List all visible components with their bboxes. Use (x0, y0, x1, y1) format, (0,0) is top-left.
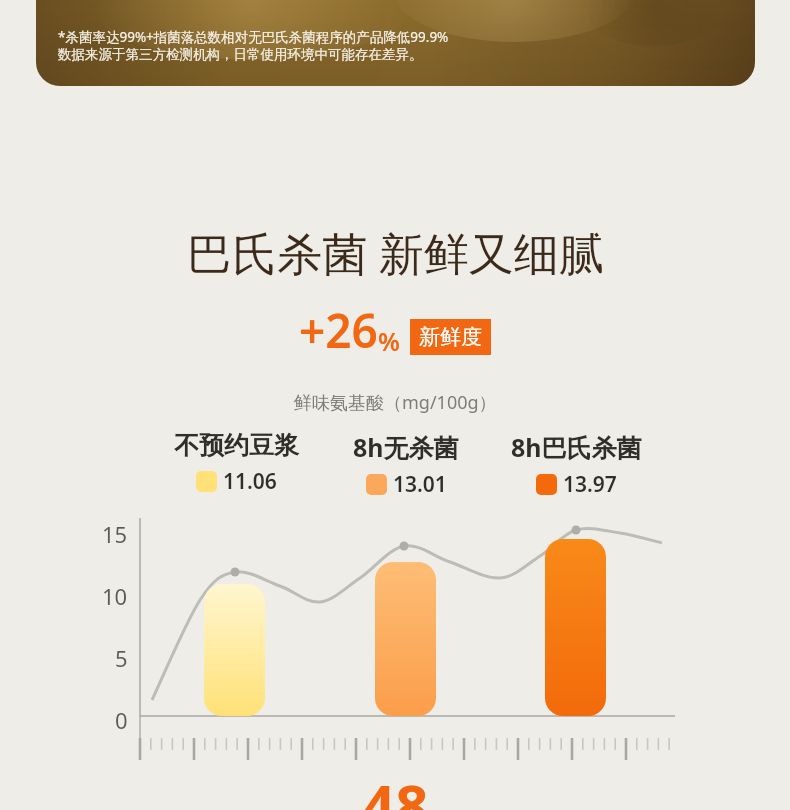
staticText: 鲜味氨基酸（mg/100g） (294, 390, 497, 415)
button[interactable]: *杀菌率达99%+指菌落总数相对无巴氏杀菌程序的产品降低99.9% (36, 0, 755, 86)
staticText: 巴氏杀菌 新鲜又细腻 (187, 222, 604, 283)
staticText: 5 (115, 643, 128, 673)
button[interactable]: 不预约豆浆 (136, 430, 336, 496)
staticText: 8h巴氏杀菌 (511, 430, 642, 464)
staticText: 数据来源于第三方检测机构，日常使用环境中可能存在差异。 (58, 46, 423, 63)
staticText: 11.06 (223, 467, 277, 496)
button[interactable]: 新鲜度 (410, 319, 491, 355)
staticText: 8h无杀菌 (353, 430, 459, 464)
staticText: 13.97 (563, 470, 617, 499)
staticText: 不预约豆浆 (174, 430, 299, 461)
staticText: % (378, 324, 400, 358)
staticText: 新鲜度 (419, 324, 482, 350)
staticText: 10 (102, 581, 128, 611)
staticText: +26 (299, 299, 378, 362)
staticText: 13.01 (393, 470, 447, 499)
button[interactable]: 8h巴氏杀菌 (476, 430, 676, 499)
staticText: *杀菌率达99%+指菌落总数相对无巴氏杀菌程序的产品降低99.9% (58, 28, 449, 46)
button[interactable]: 8h无杀菌 (306, 430, 506, 499)
staticText: 0 (115, 705, 128, 735)
staticText: 48 (362, 765, 429, 810)
staticText: 15 (102, 519, 128, 549)
